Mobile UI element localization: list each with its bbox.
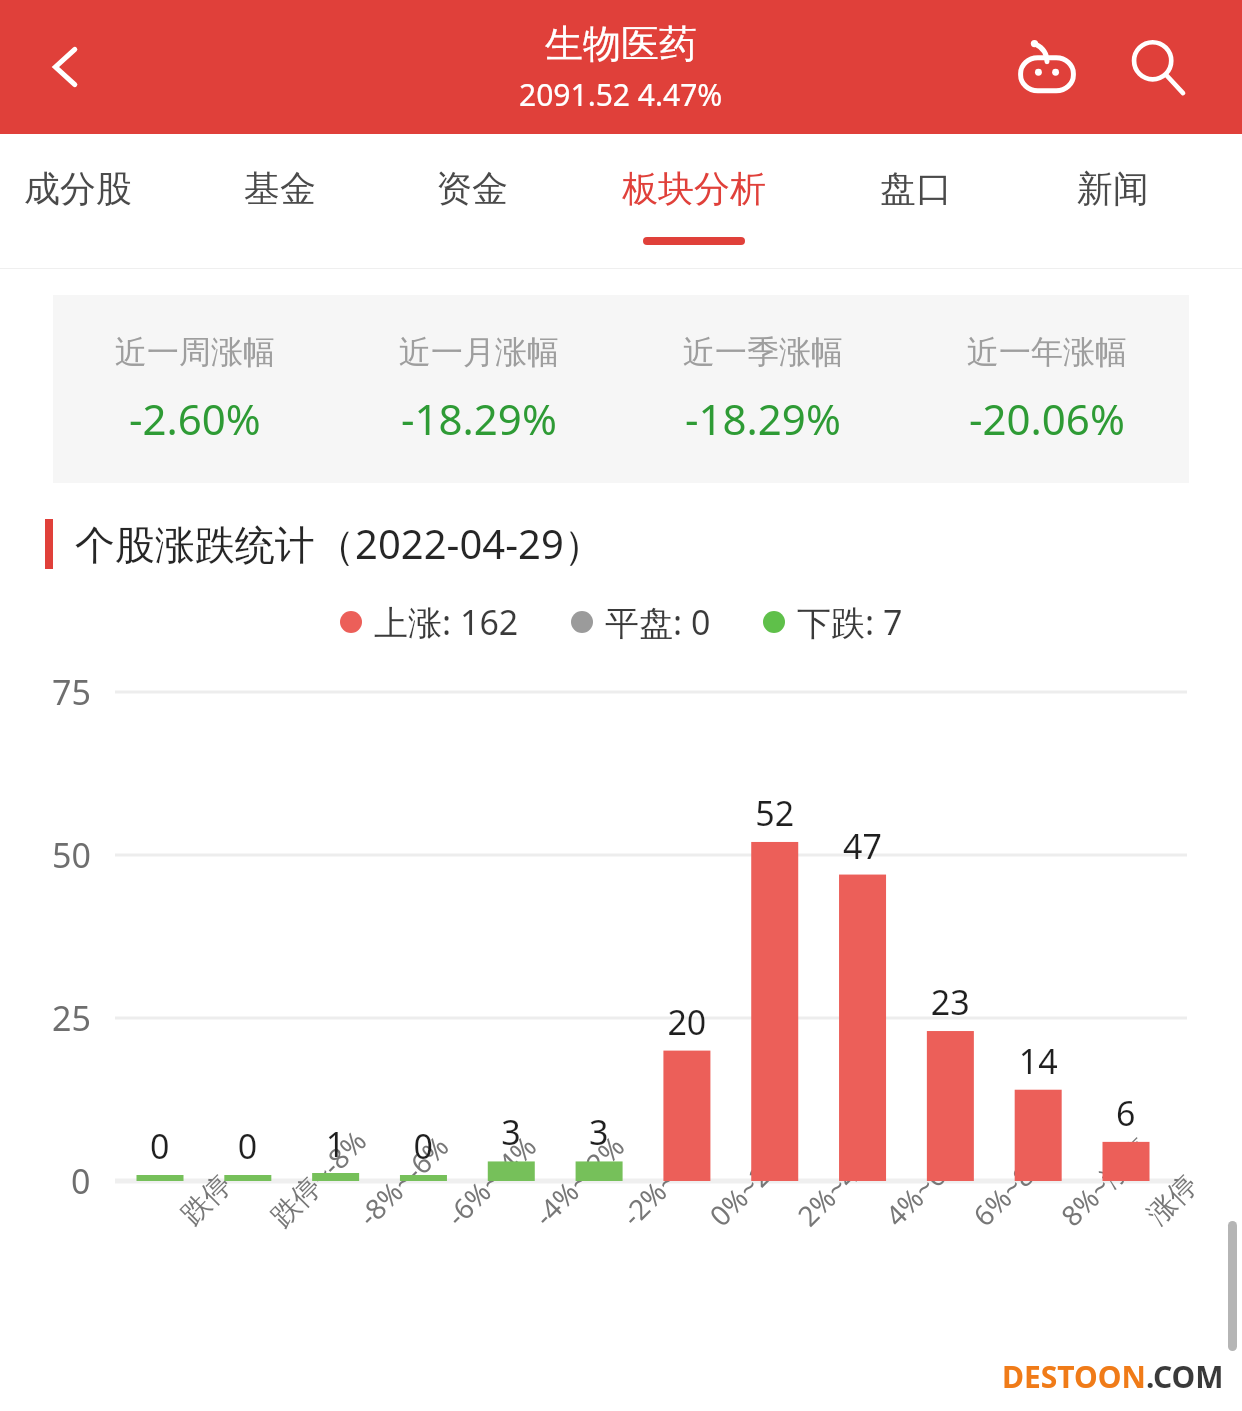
staticText: 下跌: 7	[797, 599, 903, 645]
staticText: 新闻	[1077, 166, 1149, 211]
button[interactable]: 近一年涨幅	[905, 295, 1189, 483]
staticText: 近一月涨幅	[399, 332, 559, 372]
staticText: 盘口	[880, 166, 952, 211]
button[interactable]: Back	[24, 25, 108, 109]
button[interactable]: 下跌: 7	[763, 599, 903, 645]
button[interactable]: 平盘: 0	[571, 599, 711, 645]
button[interactable]: 新闻	[1012, 134, 1214, 269]
staticText: 近一季涨幅	[683, 332, 843, 372]
button[interactable]: 近一季涨幅	[621, 295, 905, 483]
staticText: 平盘: 0	[605, 599, 711, 645]
button[interactable]: 板块分析	[568, 134, 820, 269]
staticText: 基金	[244, 166, 316, 211]
button[interactable]: 近一周涨幅	[53, 295, 337, 483]
button[interactable]: 成分股	[0, 134, 184, 269]
button[interactable]: 基金	[184, 134, 376, 269]
staticText: .COM	[1146, 1356, 1224, 1397]
button[interactable]: Search	[1114, 24, 1200, 110]
staticText: 近一周涨幅	[115, 332, 275, 372]
button[interactable]: 盘口	[820, 134, 1012, 269]
staticText: 近一年涨幅	[967, 332, 1127, 372]
button[interactable]: 上涨: 162	[340, 599, 519, 645]
staticText: 生物医药	[545, 20, 697, 68]
staticText: 板块分析	[622, 166, 766, 211]
staticText: -20.06%	[969, 390, 1125, 447]
staticText: 个股涨跌统计（2022-04-29）	[75, 516, 604, 571]
staticText: -18.29%	[401, 390, 557, 447]
button[interactable]: AI assistant	[1004, 24, 1090, 110]
staticText: 成分股	[24, 166, 132, 211]
staticText: DESTOON	[1002, 1356, 1146, 1397]
staticText: 资金	[436, 166, 508, 211]
button[interactable]: 资金	[376, 134, 568, 269]
button[interactable]: 近一月涨幅	[337, 295, 621, 483]
staticText: 2091.52 4.47%	[519, 74, 723, 115]
staticText: -18.29%	[685, 390, 841, 447]
staticText: 上涨: 162	[374, 599, 519, 645]
staticText: -2.60%	[129, 390, 261, 447]
